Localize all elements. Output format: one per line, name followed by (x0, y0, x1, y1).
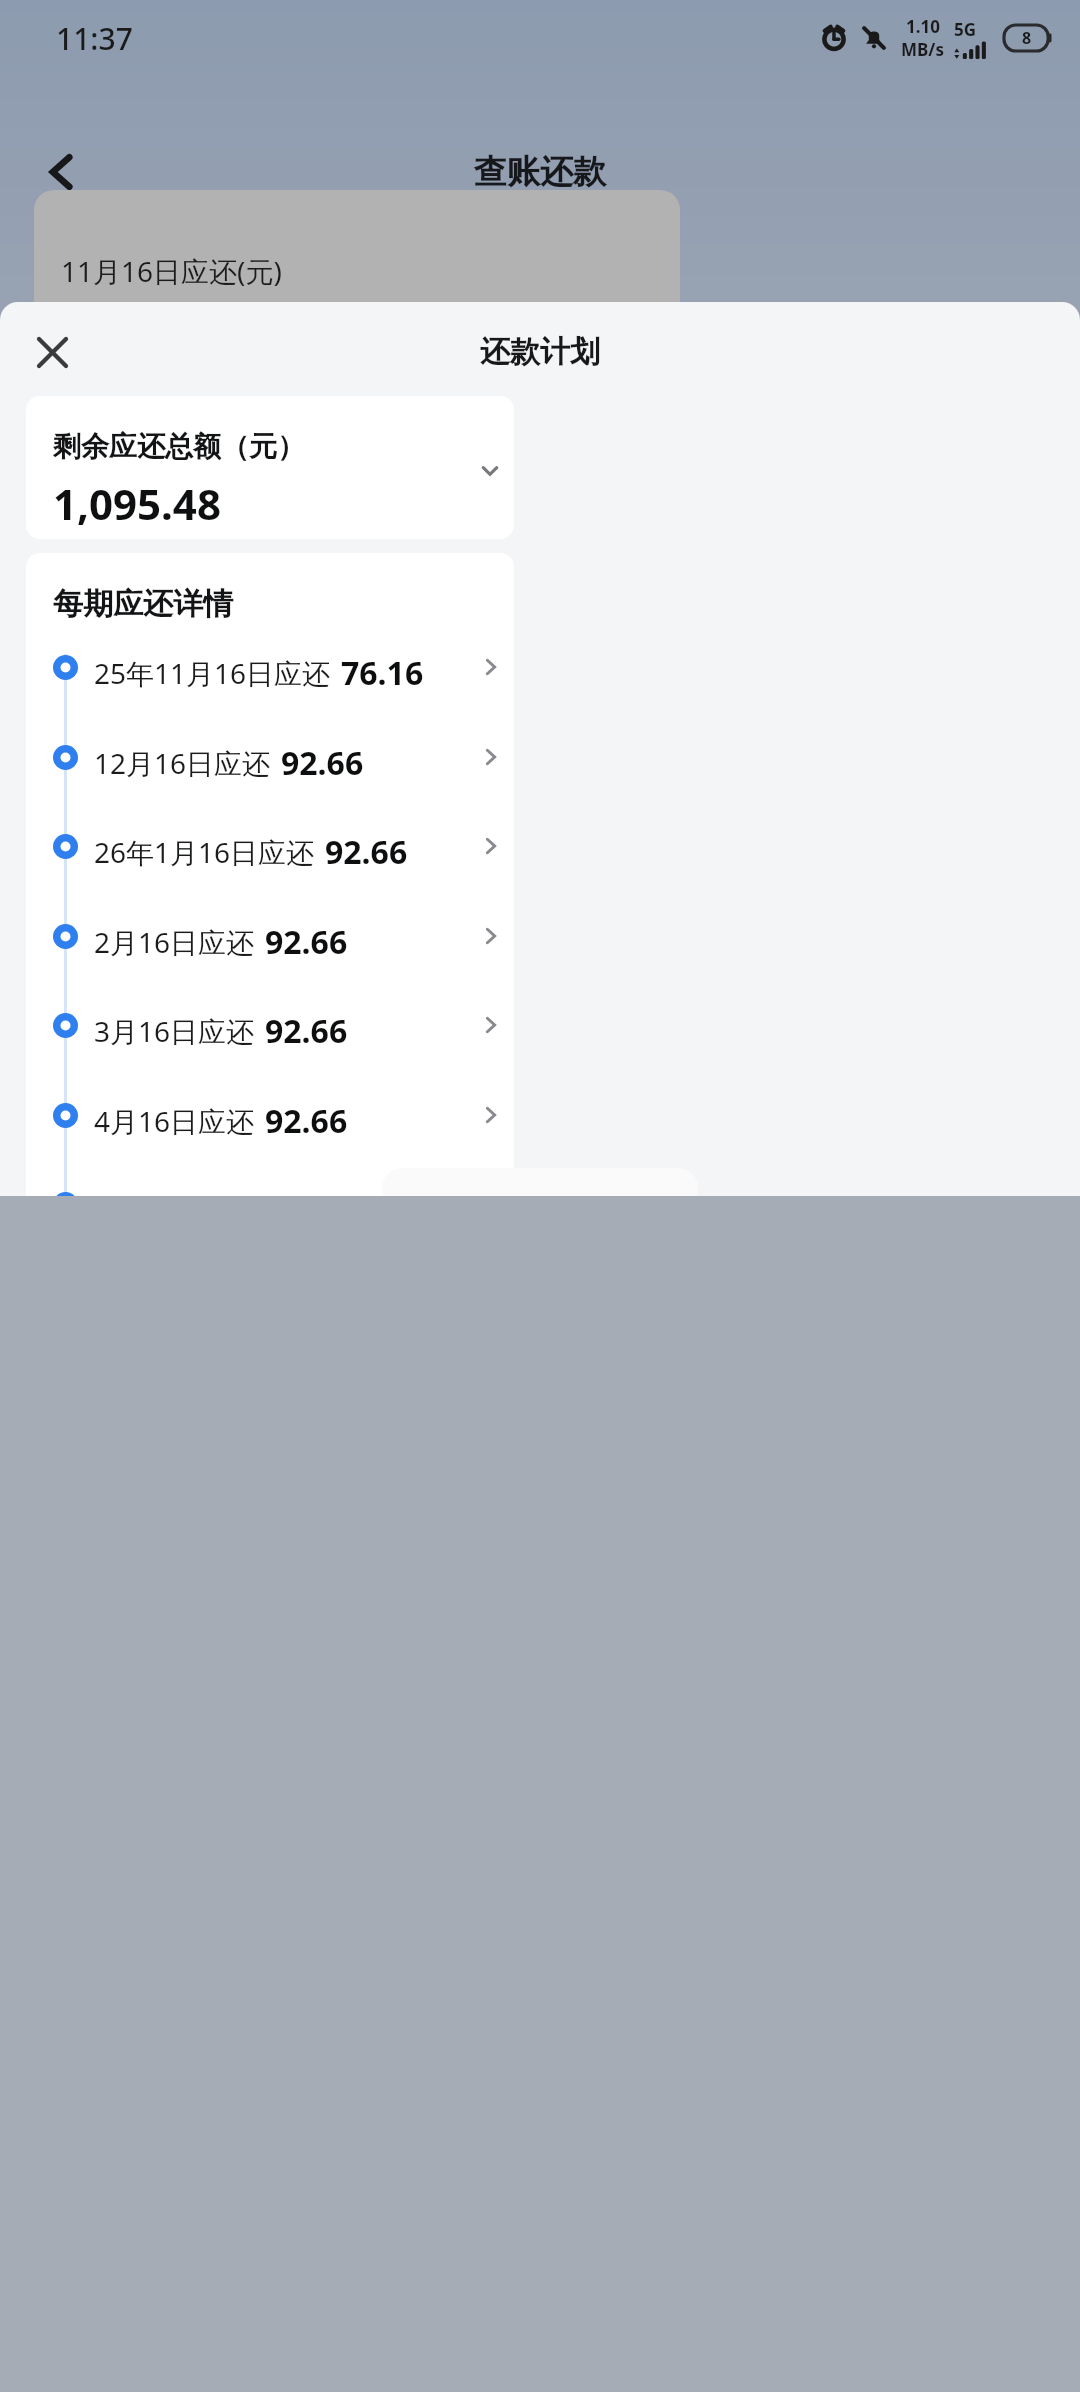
staticText: 92.66 (265, 1009, 348, 1053)
button[interactable]: 11月16日应还(元) (34, 190, 680, 450)
button[interactable]: 2月16日应还 (26, 915, 514, 1004)
staticText: 92.66 (265, 1099, 348, 1143)
staticText: 11月16日应还(元) (61, 252, 282, 290)
staticText: 4月16日应还 (94, 1102, 255, 1140)
staticText: MB/s (901, 38, 944, 61)
staticText: 还款计划 (480, 333, 600, 371)
button[interactable]: Back (18, 128, 106, 216)
button[interactable]: 5月16日应还 (26, 1183, 514, 1196)
staticText: 2月16日应还 (94, 923, 255, 961)
button[interactable]: 3月16日应还 (26, 1004, 514, 1093)
staticText: 剩余应还总额（元） (53, 429, 305, 464)
button[interactable]: 剩余应还总额（元） (26, 396, 514, 539)
staticText: 76.16 (341, 651, 424, 695)
staticText: 92.66 (325, 830, 408, 874)
staticText: 26年1月16日应还 (94, 833, 315, 871)
button[interactable]: 12月16日应还 (26, 736, 514, 825)
staticText: 92.66 (281, 741, 364, 785)
button[interactable]: 26年1月16日应还 (26, 825, 514, 914)
staticText: 92.66 (265, 920, 348, 964)
button[interactable]: 25年11月16日应还 (26, 646, 514, 735)
staticText: 1.10 (906, 15, 940, 38)
staticText: 5G (954, 18, 977, 41)
staticText: 76.16 (59, 298, 218, 382)
staticText: 8 (1022, 27, 1032, 49)
staticText: 3月16日应还 (94, 1012, 255, 1050)
staticText: 每期应还详情 (53, 585, 233, 623)
button[interactable]: Close (22, 322, 82, 382)
button[interactable]: 4月16日应还 (26, 1094, 514, 1183)
staticText: 12月16日应还 (94, 744, 271, 782)
staticText: 查账还款 (474, 151, 606, 193)
staticText: 1,095.48 (53, 475, 221, 532)
staticText: 11:37 (56, 18, 133, 59)
staticText: 25年11月16日应还 (94, 654, 331, 692)
